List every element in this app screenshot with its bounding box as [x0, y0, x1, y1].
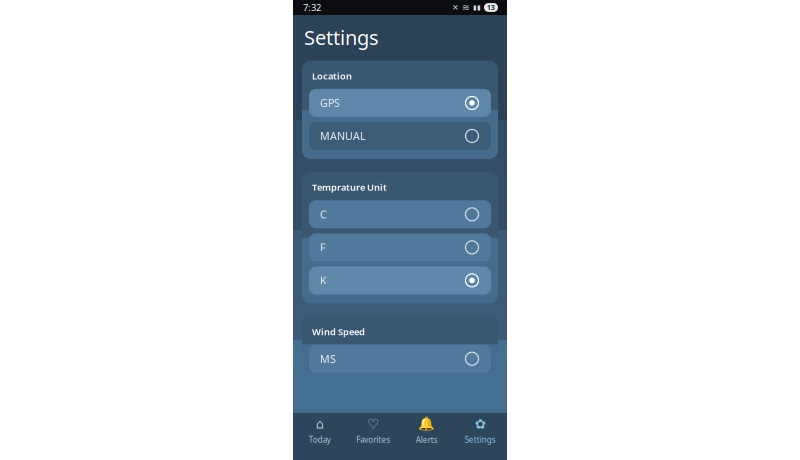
staticText: ▮▮ [473, 4, 481, 11]
staticText: K [320, 273, 327, 287]
staticText: Settings [304, 24, 379, 51]
staticText: F [320, 240, 326, 254]
button[interactable]: ✿ [453, 413, 507, 449]
button[interactable]: ♡ [346, 413, 400, 449]
staticText: Settings [465, 434, 496, 445]
staticText: C [320, 207, 327, 221]
staticText: MANUAL [320, 129, 366, 143]
staticText: Favorites [356, 434, 390, 445]
staticText: ♡ [367, 416, 379, 431]
staticText: 7:32 [303, 1, 321, 14]
staticText: ⌂ [316, 416, 324, 431]
staticText: ✕ [452, 3, 459, 12]
staticText: MS [320, 352, 336, 366]
button[interactable]: F [309, 233, 491, 261]
staticText: Today [309, 434, 331, 445]
button[interactable]: 🔔 [400, 413, 453, 449]
button[interactable]: K [309, 266, 491, 294]
staticText: GPS [320, 96, 340, 110]
button[interactable]: MANUAL [309, 122, 491, 150]
staticText: ≋ [462, 2, 470, 13]
staticText: 🔔 [418, 416, 435, 431]
staticText: Location [312, 70, 352, 82]
button[interactable]: GPS [309, 89, 491, 117]
button[interactable]: C [309, 200, 491, 228]
staticText: ✿ [475, 416, 486, 431]
button[interactable]: MS [309, 345, 491, 373]
staticText: Wind Speed [312, 325, 365, 338]
staticText: Temprature Unit [312, 181, 387, 193]
staticText: 13 [487, 3, 495, 12]
button[interactable]: ⌂ [293, 413, 346, 449]
staticText: Alerts [416, 434, 438, 445]
